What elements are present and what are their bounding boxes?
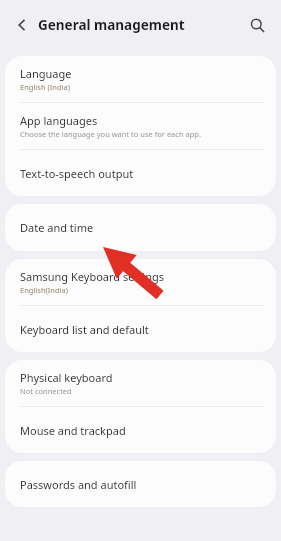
staticText: Not connected (20, 386, 72, 396)
staticText: Samsung Keyboard settings (20, 269, 165, 284)
button[interactable]: Physical keyboard (5, 360, 276, 406)
staticText: Mouse and trackpad (20, 423, 126, 438)
button[interactable]: Language (5, 56, 276, 102)
button[interactable]: Mouse and trackpad (5, 407, 276, 453)
staticText: Date and time (20, 220, 94, 235)
staticText: Choose the language you want to use for … (20, 129, 201, 139)
staticText: App languages (20, 113, 98, 128)
button[interactable]: Date and time (5, 204, 276, 251)
button[interactable]: Keyboard list and default (5, 306, 276, 352)
button[interactable]: Text-to-speech output (5, 150, 276, 196)
button[interactable]: Back (8, 11, 36, 39)
staticText: General management (38, 16, 185, 34)
staticText: Keyboard list and default (20, 322, 149, 337)
staticText: English(India) (20, 285, 68, 295)
button[interactable]: Samsung Keyboard settings (5, 259, 276, 305)
staticText: Language (20, 66, 72, 81)
button[interactable]: App languages (5, 103, 276, 149)
staticText: Passwords and autofill (20, 477, 137, 492)
button[interactable]: Search (242, 10, 272, 40)
staticText: English (India) (20, 82, 70, 92)
staticText: Physical keyboard (20, 370, 113, 385)
staticText: Text-to-speech output (20, 166, 134, 181)
button[interactable]: Passwords and autofill (5, 461, 276, 507)
